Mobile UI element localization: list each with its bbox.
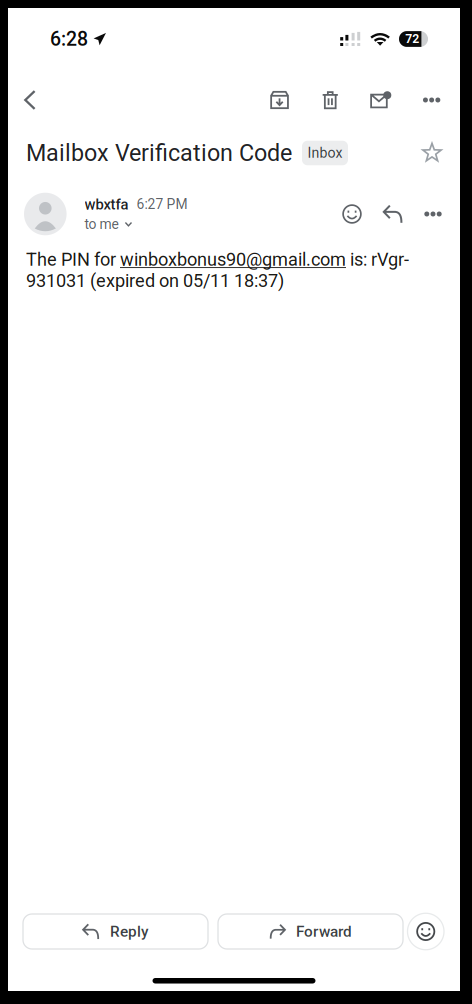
staticText: The PIN for winboxbonus90@gmail.com is: …: [26, 249, 409, 291]
button[interactable]: Delete: [305, 76, 356, 124]
staticText: to me: [85, 216, 119, 232]
button[interactable]: Reply: [23, 914, 208, 949]
staticText: 72: [405, 31, 419, 46]
button[interactable]: More options: [414, 193, 452, 235]
staticText: 6:27 PM: [137, 196, 188, 212]
button[interactable]: Reply: [372, 193, 414, 235]
staticText: Mailbox Verification Code: [26, 139, 292, 167]
staticText: Inbox: [307, 145, 342, 161]
staticText: Reply: [110, 922, 149, 940]
staticText: Forward: [296, 922, 352, 940]
button[interactable]: Star: [415, 136, 449, 170]
staticText: wbxtfa: [85, 196, 129, 213]
button[interactable]: Back: [8, 76, 52, 124]
staticText: 6:28: [50, 28, 88, 50]
button[interactable]: More options: [406, 76, 457, 124]
button[interactable]: Forward: [218, 914, 403, 949]
button[interactable]: to me: [85, 216, 132, 232]
button[interactable]: Add reaction: [332, 193, 372, 235]
button[interactable]: Add reaction: [407, 913, 444, 950]
button[interactable]: Archive: [254, 76, 305, 124]
button[interactable]: Mark as unread: [356, 76, 406, 124]
